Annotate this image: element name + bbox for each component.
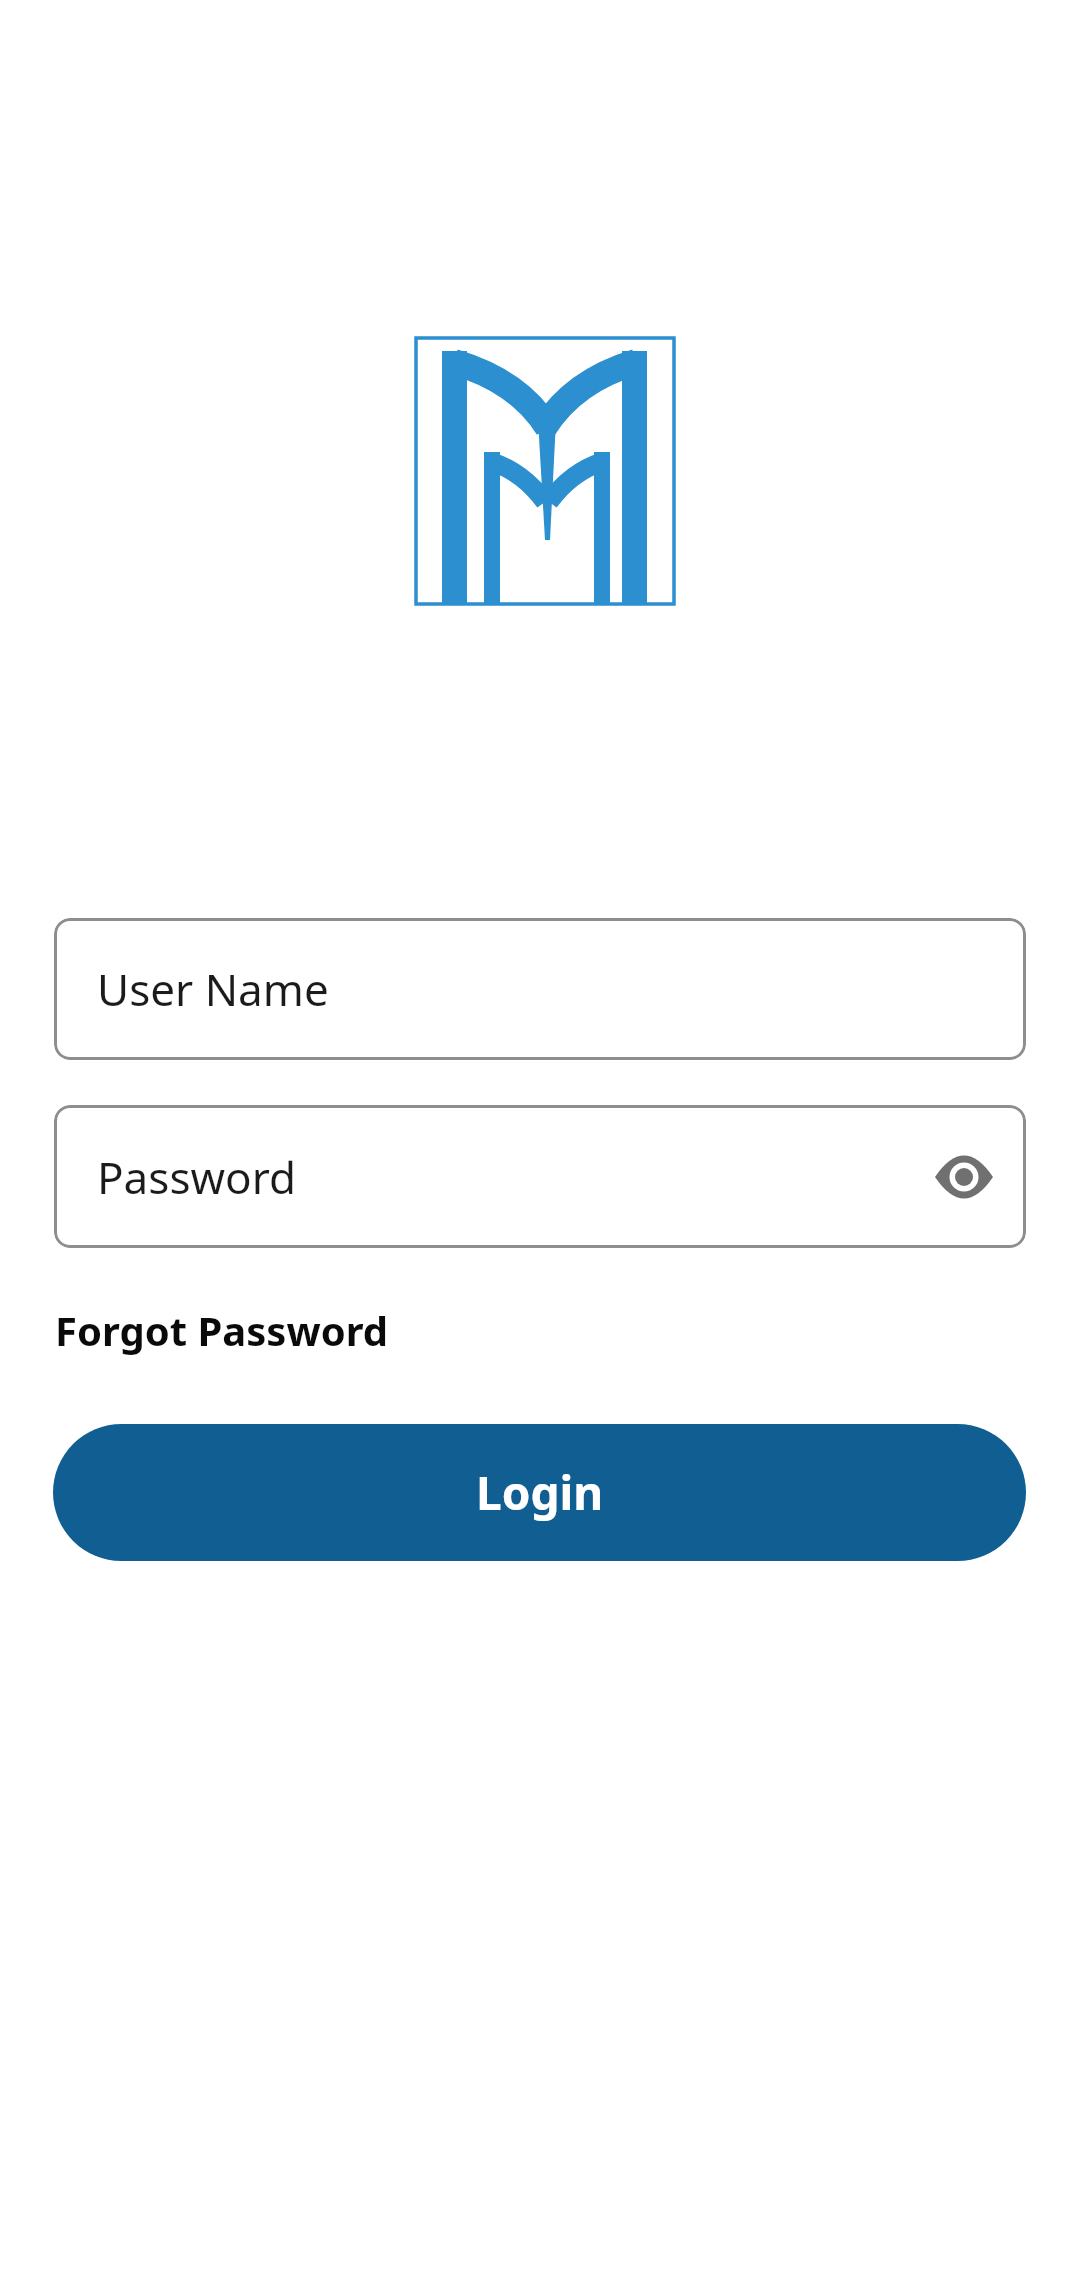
- button[interactable]: User Name: [54, 918, 1026, 1060]
- staticText: Forgot Password: [55, 1303, 389, 1357]
- button[interactable]: Login: [53, 1424, 1026, 1561]
- button[interactable]: Password: [54, 1105, 1026, 1248]
- staticText: Login: [476, 1461, 604, 1524]
- button[interactable]: Forgot Password: [55, 1303, 389, 1357]
- staticText: Password: [97, 1147, 297, 1207]
- staticText: User Name: [97, 959, 329, 1019]
- button[interactable]: [935, 1155, 993, 1199]
